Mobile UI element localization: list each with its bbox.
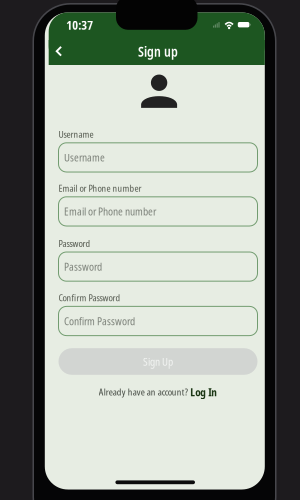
staticText: Email or Phone number	[64, 204, 156, 219]
staticText: Sign Up	[143, 354, 173, 369]
staticText: Password	[58, 237, 90, 250]
staticText: Username	[58, 128, 93, 140]
staticText: Username	[64, 150, 105, 165]
button[interactable]: Password	[58, 252, 257, 281]
button[interactable]: Sign Up	[58, 348, 257, 375]
staticText: 10:37	[66, 17, 93, 33]
staticText: Sign up	[138, 42, 178, 61]
button[interactable]: Confirm Password	[58, 306, 257, 336]
button[interactable]: Already have an account?	[58, 386, 257, 398]
staticText: Confirm Password	[64, 314, 135, 328]
staticText: Log In	[190, 385, 217, 399]
button[interactable]: Email or Phone number	[58, 197, 257, 226]
staticText: Already have an account?	[99, 386, 188, 398]
staticText: Confirm Password	[58, 291, 120, 304]
button[interactable]: Username	[58, 143, 257, 172]
button[interactable]: Back	[49, 41, 69, 61]
staticText: Password	[64, 259, 102, 274]
staticText: Email or Phone number	[58, 182, 141, 194]
